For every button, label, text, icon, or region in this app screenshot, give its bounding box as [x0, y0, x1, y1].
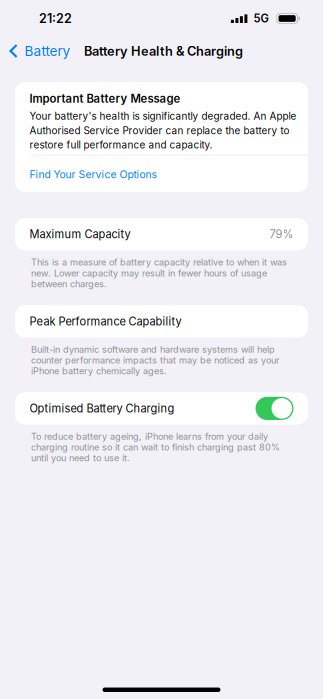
staticText: Your battery's health is significantly d… [29, 110, 296, 151]
staticText: Maximum Capacity [29, 228, 130, 241]
staticText: Built-in dynamic software and hardware s… [31, 344, 279, 376]
staticText: Find Your Service Options [29, 168, 156, 181]
staticText: Peak Performance Capability [29, 315, 181, 328]
staticText: This is a measure of battery capacity re… [31, 257, 287, 289]
staticText: 79% [269, 228, 293, 241]
staticText: 21:22 [39, 11, 72, 26]
staticText: Important Battery Message [29, 92, 180, 105]
staticText: Battery [24, 43, 70, 59]
staticText: To reduce battery ageing, iPhone learns … [31, 431, 280, 463]
staticText: 5G [253, 12, 268, 25]
staticText: Optimised Battery Charging [29, 402, 174, 415]
staticText: Battery Health & Charging [84, 43, 243, 58]
button[interactable]: Find Your Service Options [15, 155, 308, 192]
button[interactable]: Battery [0, 37, 84, 65]
